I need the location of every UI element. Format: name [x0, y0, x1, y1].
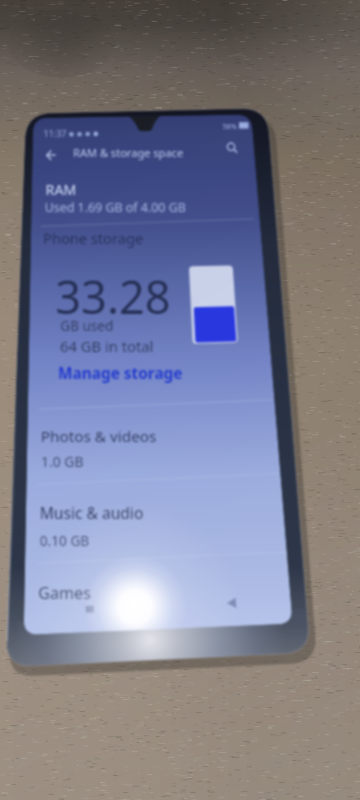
button[interactable]: Phone showing RAM and storage space sett…: [0, 0, 360, 800]
